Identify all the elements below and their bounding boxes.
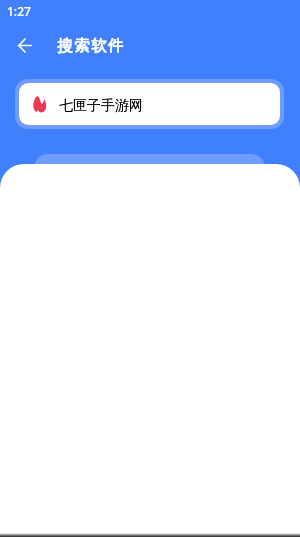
button[interactable]: 七匣子手游网 [19,83,280,125]
staticText: 搜索软件 [57,36,125,55]
button[interactable]: Back [8,29,41,62]
staticText: 1:27 [7,3,31,19]
staticText: 七匣子手游网 [59,97,143,115]
staticText: 七匣子手游网 [59,97,143,115]
